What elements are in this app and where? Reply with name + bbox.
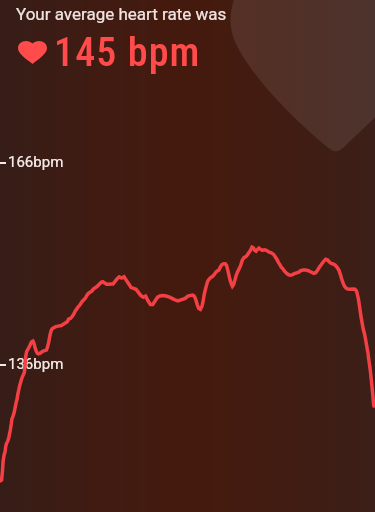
- staticText: 136bpm: [8, 355, 64, 373]
- button[interactable]: Your average heart rate was: [0, 0, 375, 512]
- staticText: 166bpm: [8, 153, 64, 171]
- staticText: Your average heart rate was: [16, 4, 227, 24]
- other: Heart rate: [18, 41, 47, 64]
- staticText: 145 bpm: [54, 29, 201, 76]
- other: Heart rate graph: [0, 0, 375, 512]
